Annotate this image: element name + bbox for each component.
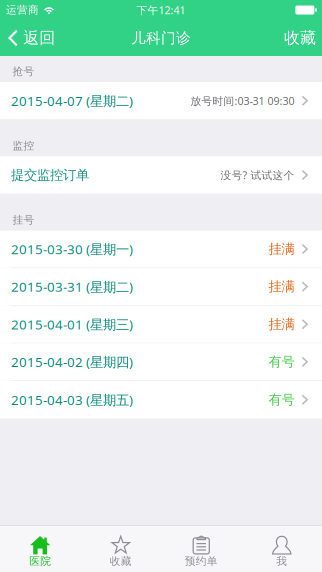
button[interactable]: 2015-04-01 (星期三) <box>0 306 322 343</box>
staticText: 挂号 <box>12 213 34 227</box>
staticText: 没号? 试试这个 <box>220 168 294 182</box>
staticText: 返回 <box>23 28 55 48</box>
staticText: 放号时间:03-31 09:30 <box>190 94 294 108</box>
staticText: 预约单 <box>185 554 218 568</box>
staticText: 下午12:41 <box>136 3 185 17</box>
staticText: 2015-04-03 (星期五) <box>11 391 133 409</box>
staticText: 有号 <box>268 354 294 370</box>
button[interactable]: 2015-04-03 (星期五) <box>0 381 322 418</box>
staticText: 抢号 <box>12 65 34 78</box>
button[interactable]: 我 <box>241 526 322 572</box>
staticText: 儿科门诊 <box>131 29 191 47</box>
staticText: 挂满 <box>268 278 294 295</box>
button[interactable]: 2015-04-07 (星期二) <box>0 82 322 119</box>
staticText: 挂满 <box>268 316 294 332</box>
button[interactable]: 返回 <box>0 20 63 56</box>
staticText: 2015-04-01 (星期三) <box>11 315 133 333</box>
staticText: 运营商 <box>6 3 39 16</box>
button[interactable]: 医院 <box>0 526 80 572</box>
staticText: 有号 <box>268 392 294 408</box>
staticText: 收藏 <box>110 554 132 568</box>
staticText: 医院 <box>29 554 51 568</box>
staticText: 2015-04-02 (星期四) <box>11 353 133 371</box>
staticText: 监控 <box>12 139 34 152</box>
button[interactable]: 2015-04-02 (星期四) <box>0 343 322 381</box>
staticText: 2015-03-30 (星期一) <box>11 240 133 258</box>
staticText: 2015-04-07 (星期二) <box>11 92 133 110</box>
button[interactable]: 收藏 <box>80 526 161 572</box>
button[interactable]: 提交监控订单 <box>0 156 322 194</box>
staticText: 2015-03-31 (星期二) <box>11 278 133 295</box>
button[interactable]: 预约单 <box>161 526 241 572</box>
button[interactable]: 2015-03-30 (星期一) <box>0 231 322 268</box>
button[interactable]: 收藏 <box>274 20 322 56</box>
staticText: 我 <box>276 554 287 568</box>
staticText: 收藏 <box>284 28 316 48</box>
staticText: 提交监控订单 <box>11 167 89 183</box>
button[interactable]: 2015-03-31 (星期二) <box>0 268 322 306</box>
staticText: 挂满 <box>268 241 294 257</box>
